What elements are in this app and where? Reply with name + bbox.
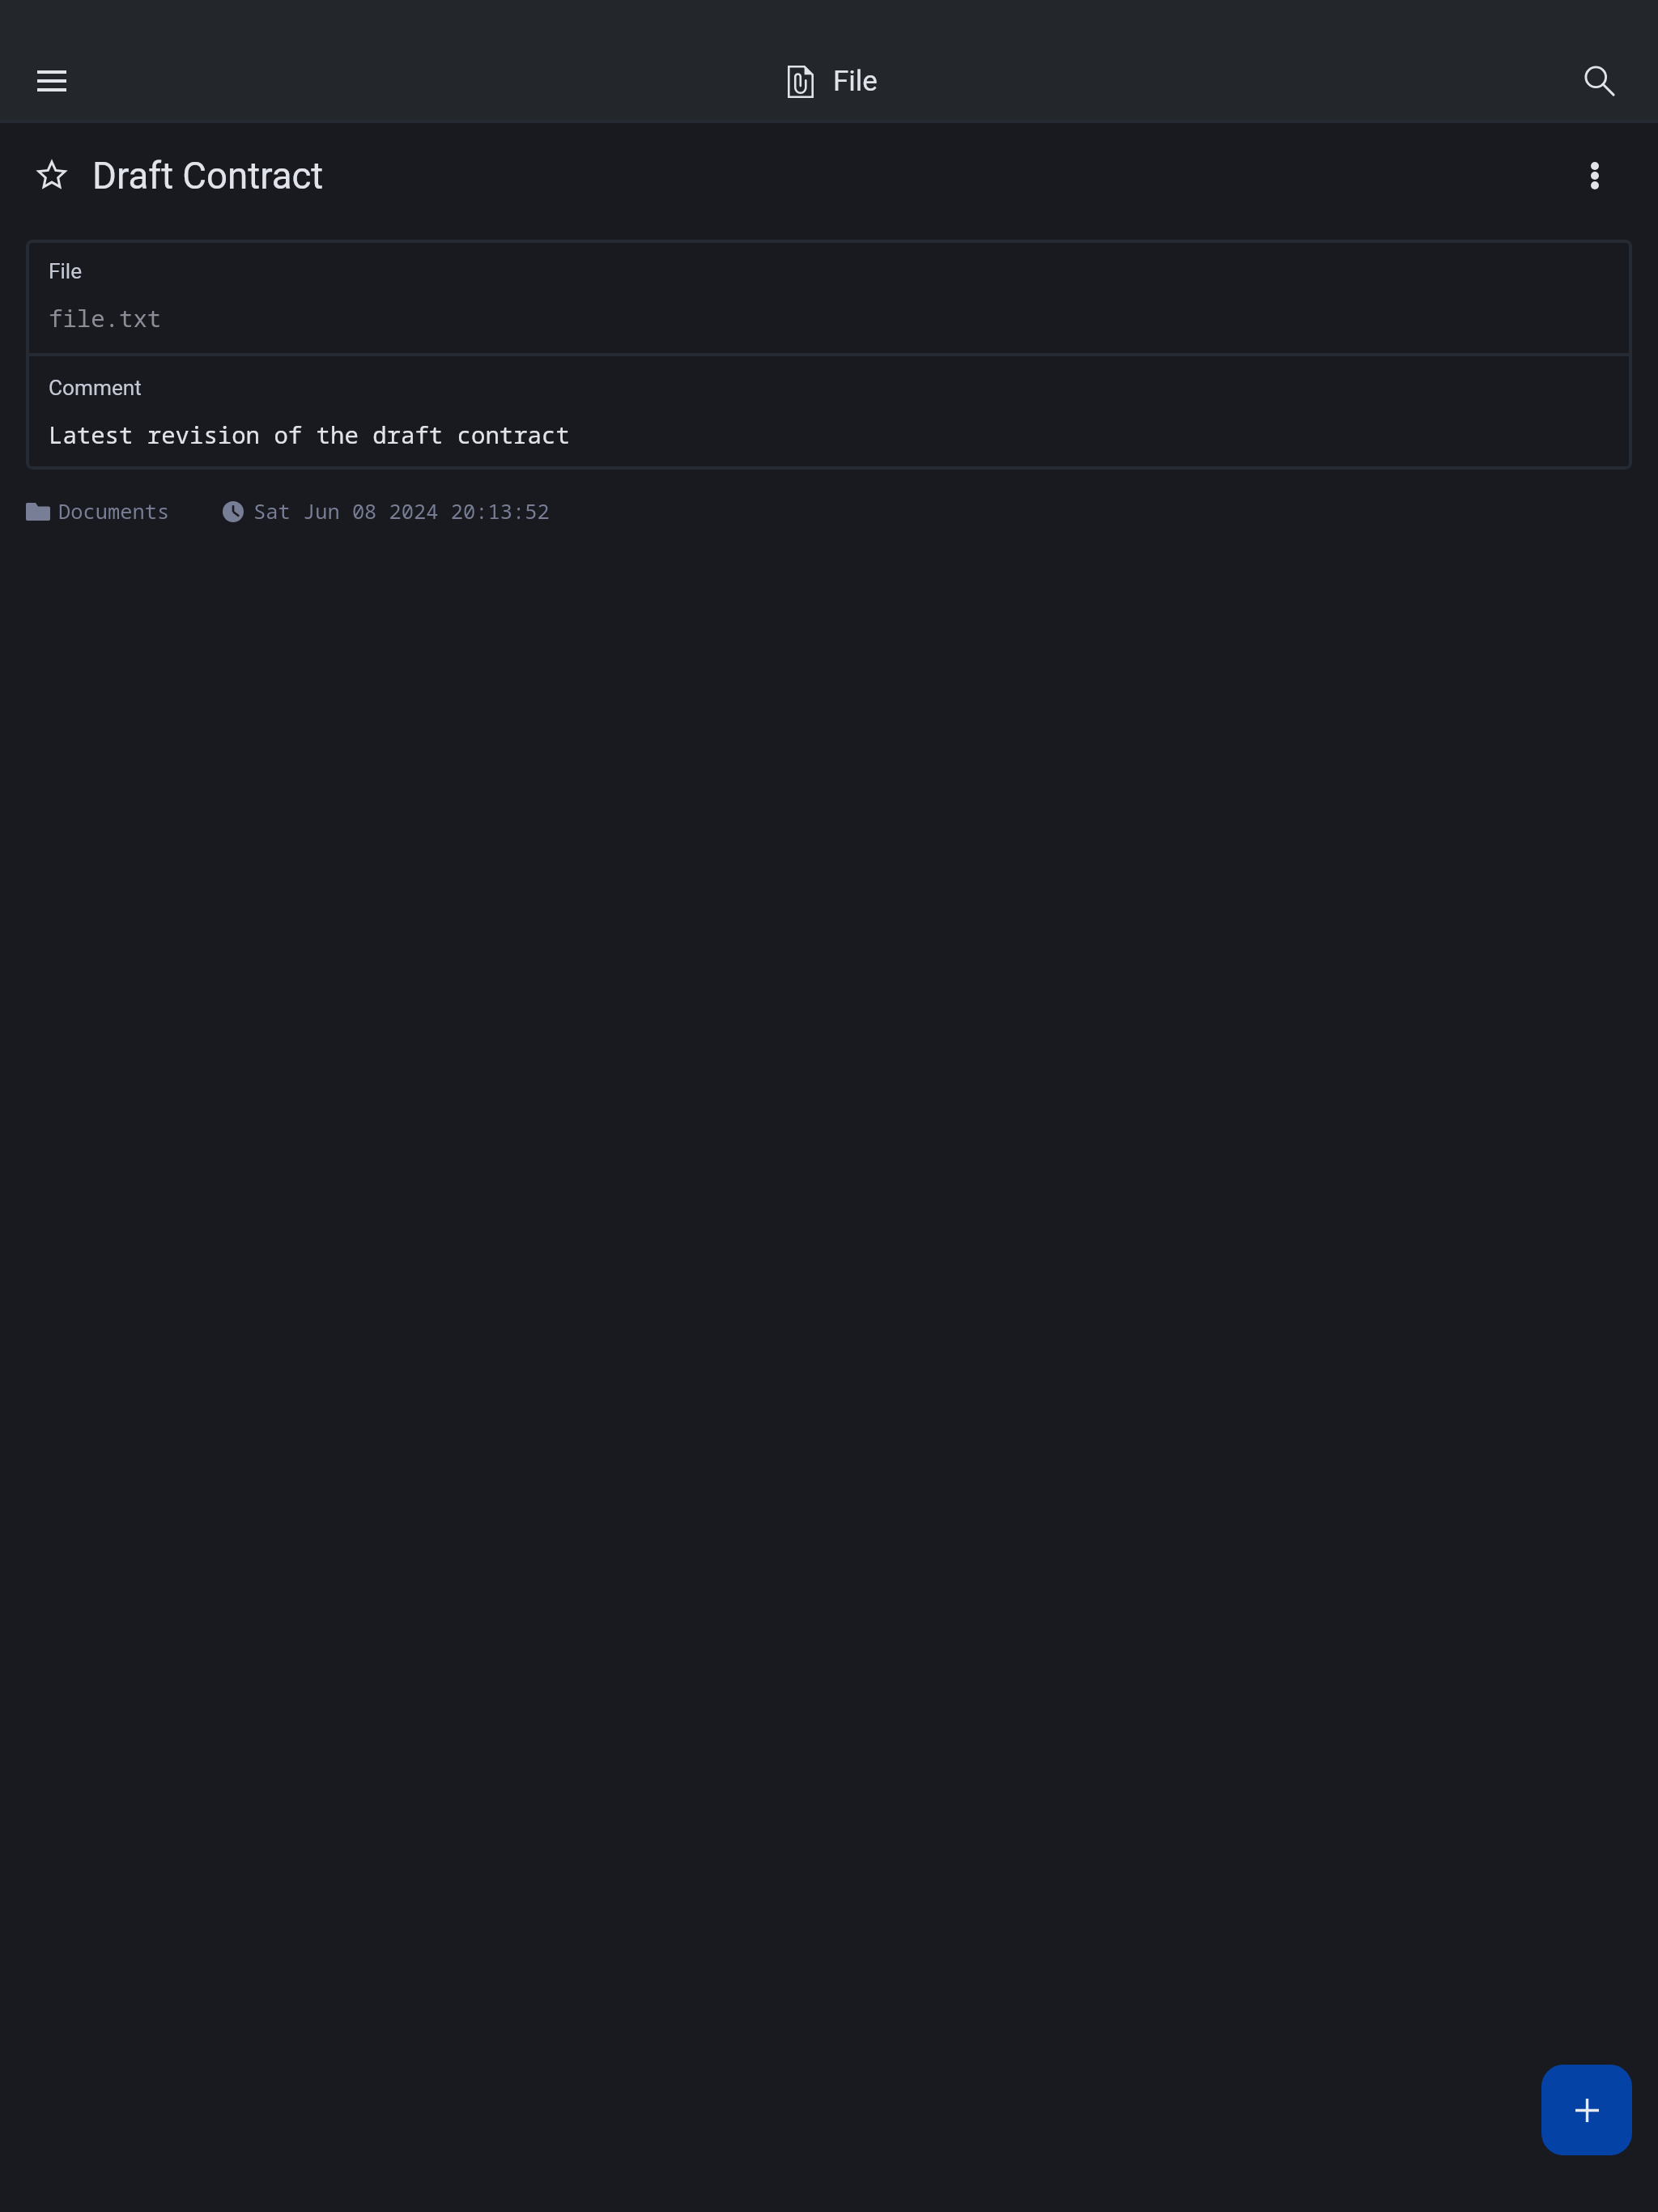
staticText: Latest revision of the draft contract: [49, 419, 570, 450]
button[interactable]: Menu: [16, 45, 87, 117]
button[interactable]: Comment: [26, 356, 1632, 470]
staticText: file.txt: [49, 302, 162, 334]
button[interactable]: File: [26, 240, 1632, 353]
button[interactable]: More options: [1558, 138, 1632, 213]
button[interactable]: Add: [1541, 2065, 1632, 2155]
button[interactable]: Favourite: [18, 142, 86, 210]
staticText: Sat Jun 08 2024 20:13:52: [253, 497, 550, 525]
staticText: File: [833, 65, 878, 98]
staticText: Draft Contract: [92, 155, 324, 198]
staticText: Documents: [58, 497, 170, 525]
staticText: Comment: [49, 376, 142, 401]
button[interactable]: Search: [1564, 45, 1635, 117]
staticText: File: [49, 259, 83, 284]
